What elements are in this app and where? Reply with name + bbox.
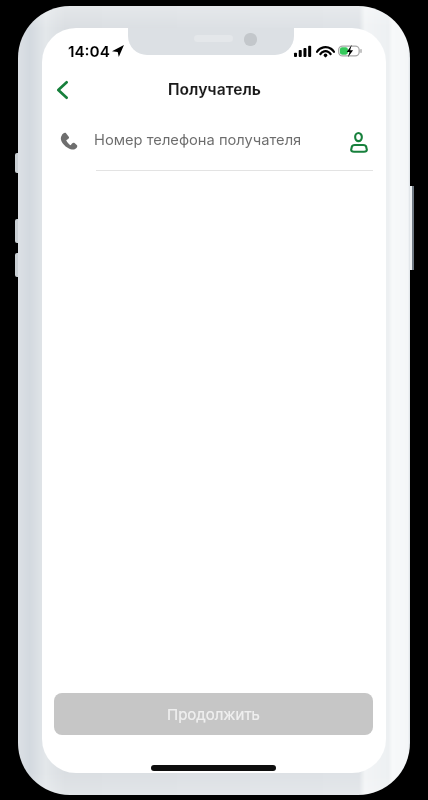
staticText: Продолжить	[167, 705, 260, 723]
staticText: 14:04	[68, 42, 110, 60]
button[interactable]: Выбрать контакт	[341, 124, 377, 160]
staticText: Номер телефона получателя	[94, 131, 302, 149]
button[interactable]: Назад	[42, 70, 82, 110]
staticText: Получатель	[168, 80, 261, 99]
button[interactable]: Номер телефона получателя	[54, 122, 334, 172]
button[interactable]: Продолжить	[54, 693, 373, 735]
